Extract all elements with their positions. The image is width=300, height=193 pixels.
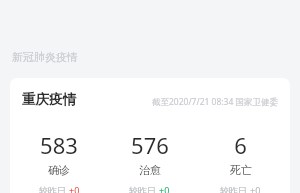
staticText: +0 [69, 184, 80, 193]
button[interactable]: 重庆疫情 [10, 78, 290, 193]
staticText: 重庆疫情 [22, 91, 76, 108]
staticText: 截至2020/7/21 08:34 国家卫健委 [152, 96, 279, 108]
staticText: 较昨日 [220, 184, 250, 193]
staticText: +0 [250, 184, 261, 193]
staticText: 较昨日 [129, 184, 159, 193]
button[interactable]: 6 [195, 130, 286, 193]
staticText: 治愈 [139, 163, 161, 177]
staticText: +0 [159, 184, 170, 193]
staticText: 死亡 [230, 163, 252, 177]
staticText: 新冠肺炎疫情 [12, 50, 78, 64]
button[interactable]: 576 [104, 130, 195, 193]
staticText: 确诊 [48, 163, 70, 177]
staticText: 6 [234, 130, 247, 160]
staticText: 583 [40, 130, 78, 160]
staticText: 576 [131, 130, 169, 160]
button[interactable]: 583 [14, 130, 104, 193]
staticText: 较昨日 [39, 184, 69, 193]
